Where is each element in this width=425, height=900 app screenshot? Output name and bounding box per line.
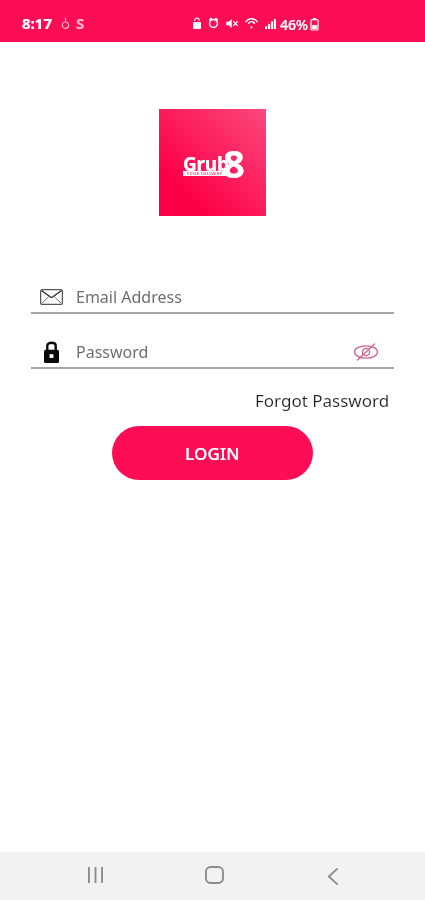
- staticText: FOOD DELIVERY: [187, 171, 223, 176]
- staticText: 46%: [280, 15, 308, 34]
- staticText: Grub: [183, 151, 229, 177]
- staticText: S: [76, 13, 85, 33]
- staticText: Password: [76, 341, 149, 363]
- staticText: 8: [223, 137, 245, 189]
- staticText: Forgot Password: [255, 389, 390, 412]
- button[interactable]: Recents: [71, 852, 119, 900]
- staticText: 8:17: [22, 13, 52, 33]
- button[interactable]: Password: [31, 337, 394, 367]
- button[interactable]: Email Address: [31, 282, 394, 312]
- button[interactable]: Back: [309, 852, 357, 900]
- button[interactable]: Home: [190, 852, 238, 900]
- button[interactable]: Show password: [354, 339, 394, 365]
- button[interactable]: Forgot Password: [253, 386, 392, 415]
- staticText: Email Address: [76, 286, 182, 308]
- button[interactable]: LOGIN: [112, 426, 313, 480]
- staticText: LOGIN: [185, 442, 240, 465]
